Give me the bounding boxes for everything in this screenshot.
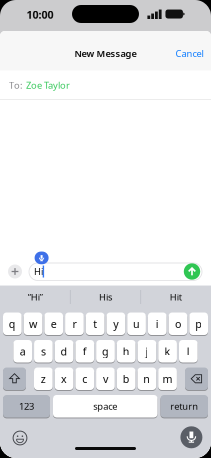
- staticText: w: [29, 317, 37, 331]
- staticText: j: [145, 344, 148, 358]
- staticText: n: [143, 372, 150, 386]
- button[interactable]: g: [96, 340, 115, 363]
- button[interactable]: c: [75, 367, 94, 390]
- button[interactable]: m: [158, 367, 177, 390]
- button[interactable]: z: [34, 367, 53, 390]
- button[interactable]: His: [71, 284, 139, 309]
- staticText: 10:00: [26, 7, 53, 22]
- staticText: t: [93, 317, 97, 331]
- staticText: “Hi”: [28, 291, 43, 303]
- staticText: i: [156, 317, 159, 331]
- button[interactable]: i: [148, 312, 167, 335]
- button[interactable]: q: [3, 312, 22, 335]
- button[interactable]: [13, 431, 27, 445]
- staticText: q: [9, 317, 16, 331]
- staticText: m: [162, 372, 172, 386]
- staticText: c: [82, 372, 87, 386]
- staticText: 123: [19, 400, 34, 412]
- staticText: a: [20, 344, 26, 358]
- button[interactable]: x: [55, 367, 73, 390]
- button[interactable]: l: [179, 340, 198, 363]
- button[interactable]: p: [189, 312, 208, 335]
- button[interactable]: [35, 251, 49, 264]
- button[interactable]: [184, 263, 200, 280]
- staticText: o: [175, 317, 181, 331]
- staticText: New Message: [74, 47, 136, 60]
- staticText: z: [41, 372, 46, 386]
- staticText: p: [195, 317, 202, 331]
- staticText: s: [41, 344, 46, 358]
- staticText: d: [61, 344, 68, 358]
- button[interactable]: [29, 263, 202, 280]
- button[interactable]: t: [86, 312, 104, 335]
- button[interactable]: k: [158, 340, 177, 363]
- staticText: Cancel: [175, 47, 203, 60]
- staticText: k: [165, 344, 171, 358]
- staticText: l: [187, 344, 190, 358]
- button[interactable]: [180, 426, 202, 448]
- button[interactable]: [3, 367, 26, 390]
- button[interactable]: space: [53, 395, 157, 418]
- button[interactable]: h: [117, 340, 136, 363]
- staticText: u: [133, 317, 140, 331]
- staticText: y: [113, 317, 118, 331]
- staticText: r: [72, 317, 76, 331]
- staticText: His: [99, 291, 112, 303]
- button[interactable]: a: [13, 340, 32, 363]
- staticText: x: [61, 372, 67, 386]
- button[interactable]: [185, 367, 208, 390]
- button[interactable]: n: [137, 367, 156, 390]
- button[interactable]: “Hi”: [1, 284, 69, 309]
- staticText: space: [93, 400, 117, 412]
- staticText: g: [102, 344, 109, 358]
- staticText: b: [123, 372, 130, 386]
- staticText: Zoe Taylor: [26, 79, 70, 91]
- staticText: Hi: [34, 265, 43, 278]
- button[interactable]: v: [96, 367, 115, 390]
- staticText: h: [123, 344, 130, 358]
- staticText: v: [103, 372, 108, 386]
- button[interactable]: 123: [3, 395, 50, 418]
- button[interactable]: o: [169, 312, 187, 335]
- button[interactable]: Hit: [142, 284, 210, 309]
- staticText: f: [83, 344, 87, 358]
- button[interactable]: return: [160, 395, 208, 418]
- button[interactable]: d: [55, 340, 73, 363]
- button[interactable]: j: [137, 340, 156, 363]
- button[interactable]: f: [75, 340, 94, 363]
- button[interactable]: w: [24, 312, 42, 335]
- button[interactable]: e: [44, 312, 63, 335]
- staticText: return: [170, 400, 198, 412]
- button[interactable]: y: [106, 312, 125, 335]
- button[interactable]: r: [65, 312, 84, 335]
- button[interactable]: s: [34, 340, 53, 363]
- staticText: e: [51, 317, 57, 331]
- button[interactable]: [8, 264, 22, 278]
- button[interactable]: b: [117, 367, 135, 390]
- button[interactable]: u: [127, 312, 146, 335]
- button[interactable]: To:: [0, 70, 211, 100]
- staticText: To:: [9, 79, 23, 91]
- button[interactable]: Cancel: [169, 44, 209, 62]
- staticText: Hit: [170, 291, 182, 303]
